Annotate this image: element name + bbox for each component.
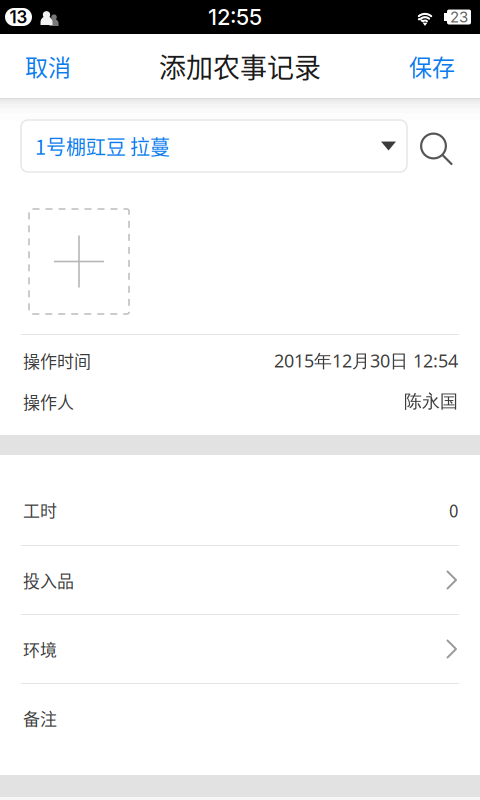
staticText: 工时 — [23, 498, 57, 522]
button[interactable]: 环境 — [0, 615, 480, 683]
staticText: 13 — [9, 7, 27, 27]
staticText: 1号棚豇豆 拉蔓 — [35, 131, 170, 160]
button[interactable]: 投入品 — [0, 546, 480, 614]
staticText: 2015年12月30日 12:54 — [274, 348, 458, 373]
staticText: 备注 — [23, 706, 57, 730]
staticText: 环境 — [23, 637, 57, 661]
staticText: 保存 — [409, 49, 455, 83]
staticText: 操作时间 — [23, 348, 91, 373]
button[interactable]: 取消 — [0, 34, 96, 98]
staticText: 操作人 — [23, 389, 74, 414]
button[interactable]: 1号棚豇豆 拉蔓 — [21, 120, 407, 172]
button[interactable]: 工时 — [0, 475, 480, 545]
staticText: 0 — [449, 498, 458, 522]
button[interactable]: 保存 — [384, 34, 480, 98]
staticText: 陈永国 — [404, 390, 458, 413]
staticText: 12:55 — [208, 4, 262, 30]
staticText: 23 — [450, 8, 468, 26]
button[interactable]: Add photo — [29, 209, 129, 314]
button[interactable]: 备注 — [0, 684, 480, 752]
staticText: 添加农事记录 — [159, 46, 321, 86]
staticText: 投入品 — [23, 568, 74, 592]
button[interactable]: Search — [420, 129, 453, 162]
staticText: 取消 — [25, 49, 71, 83]
